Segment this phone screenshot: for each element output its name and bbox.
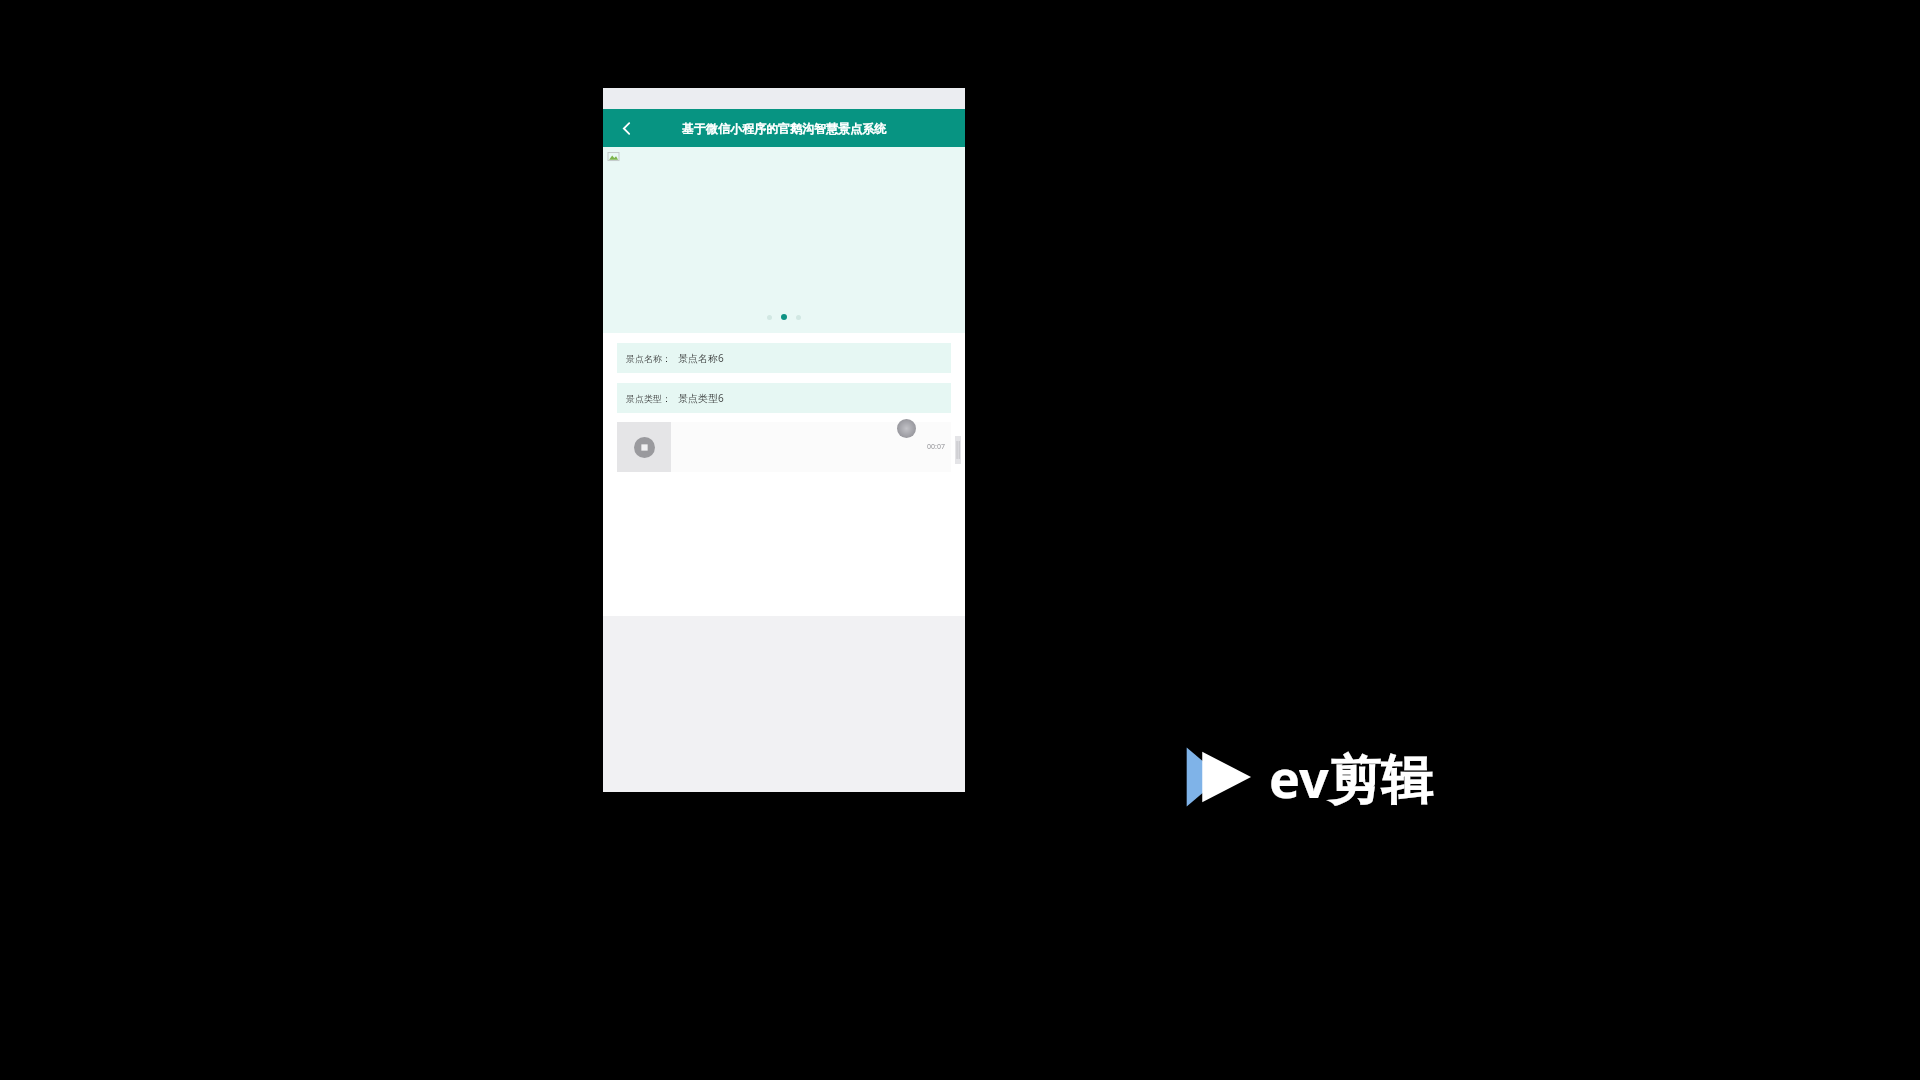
staticText: 景点类型6 — [678, 391, 724, 405]
button[interactable]: 景点名称： — [617, 343, 951, 373]
button[interactable] — [603, 147, 965, 333]
button[interactable]: Stop — [617, 422, 951, 472]
staticText: 景点名称6 — [678, 351, 724, 365]
button[interactable]: Back — [612, 114, 640, 142]
staticText: 景点类型： — [626, 393, 671, 404]
button[interactable]: Stop — [617, 422, 671, 472]
button[interactable]: Seek — [897, 419, 916, 438]
staticText: ev剪辑 — [1269, 742, 1433, 813]
staticText: 基于微信小程序的官鹅沟智慧景点系统 — [682, 121, 886, 136]
staticText: 00:07 — [927, 442, 945, 452]
staticText: 景点名称： — [626, 353, 671, 364]
button[interactable]: 景点类型： — [617, 383, 951, 413]
